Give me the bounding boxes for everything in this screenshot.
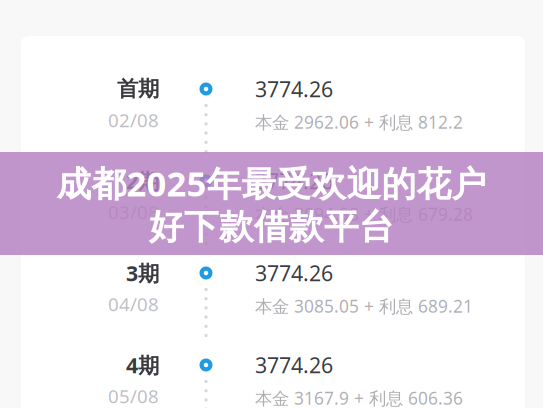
staticText: 04/08	[108, 292, 159, 316]
staticText: 4期	[126, 351, 159, 379]
staticText: 03/08	[108, 200, 159, 224]
staticText: 3774.26	[255, 259, 333, 287]
staticText: 本金 3167.9 + 利息 606.36	[255, 386, 463, 408]
button[interactable]: 2期	[21, 169, 525, 261]
staticText: 成都2025年最受欢迎的花户	[56, 160, 486, 206]
staticText: 3期	[126, 259, 159, 287]
staticText: 首期	[117, 76, 159, 102]
button[interactable]: 首期	[21, 77, 525, 169]
staticText: 05/08	[108, 384, 159, 408]
staticText: 2期	[126, 167, 159, 195]
staticText: 本金 3085.05 + 利息 689.21	[255, 294, 473, 317]
staticText: 3774.26	[255, 351, 333, 379]
staticText: 3774.26	[255, 75, 333, 103]
button[interactable]: 4期	[21, 353, 525, 408]
button[interactable]: 3期	[21, 261, 525, 353]
staticText: 02/08	[108, 108, 159, 132]
staticText: 本金 3094.98 + 利息 679.28	[255, 202, 473, 225]
staticText: 好下款借款平台	[149, 206, 394, 248]
staticText: 3774.26	[255, 167, 333, 195]
staticText: 本金 2962.06 + 利息 812.2	[255, 110, 463, 133]
